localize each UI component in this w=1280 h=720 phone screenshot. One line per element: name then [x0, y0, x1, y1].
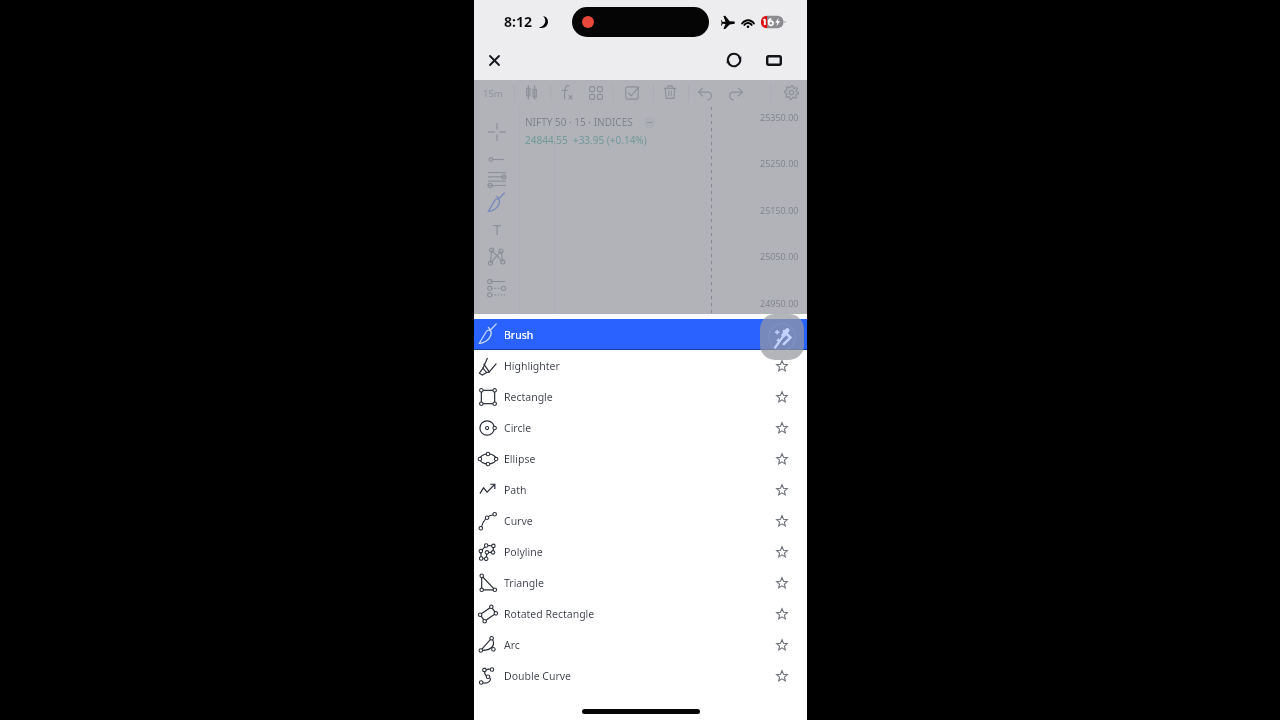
staticText: Ellipse	[504, 452, 536, 466]
button[interactable]: Close	[479, 45, 509, 75]
button[interactable]: Arc	[474, 629, 807, 660]
staticText: 24950.00	[760, 297, 799, 309]
staticText: Double Curve	[504, 669, 572, 683]
button[interactable]: Rotated Rectangle	[474, 598, 807, 629]
button[interactable]: Triangle	[474, 567, 807, 598]
staticText: Curve	[504, 514, 533, 528]
staticText: 25350.00	[760, 111, 799, 123]
staticText: Brush	[504, 328, 534, 342]
staticText: 25150.00	[760, 204, 799, 216]
staticText: 15m	[483, 87, 503, 100]
staticText: Path	[504, 483, 527, 497]
staticText: Rectangle	[504, 390, 553, 404]
staticText: NIFTY 50 · 15 · INDICES	[525, 115, 633, 129]
button[interactable]: Double Curve	[474, 660, 807, 691]
button[interactable]: Refresh	[720, 46, 748, 74]
staticText: 25050.00	[760, 250, 799, 262]
staticText: 25250.00	[760, 157, 799, 169]
staticText: Triangle	[504, 576, 544, 590]
staticText: Circle	[504, 421, 532, 435]
button[interactable]: Layout	[760, 46, 788, 74]
staticText: 8:12	[504, 12, 532, 31]
staticText: Highlighter	[504, 359, 560, 373]
button[interactable]: Curve	[474, 505, 807, 536]
staticText: T	[493, 219, 502, 237]
staticText: Polyline	[504, 545, 543, 559]
button[interactable]: Circle	[474, 412, 807, 443]
button[interactable]: Polyline	[474, 536, 807, 567]
staticText: Arc	[504, 638, 520, 652]
button[interactable]: Path	[474, 474, 807, 505]
button[interactable]: Magnet mode	[760, 314, 804, 360]
button[interactable]: Rectangle	[474, 381, 807, 412]
button[interactable]: Brush	[474, 319, 807, 350]
staticText: Rotated Rectangle	[504, 607, 595, 621]
button[interactable]: Ellipse	[474, 443, 807, 474]
staticText: 24844.55 +33.95 (+0.14%)	[525, 133, 647, 147]
button[interactable]: Highlighter	[474, 350, 807, 381]
